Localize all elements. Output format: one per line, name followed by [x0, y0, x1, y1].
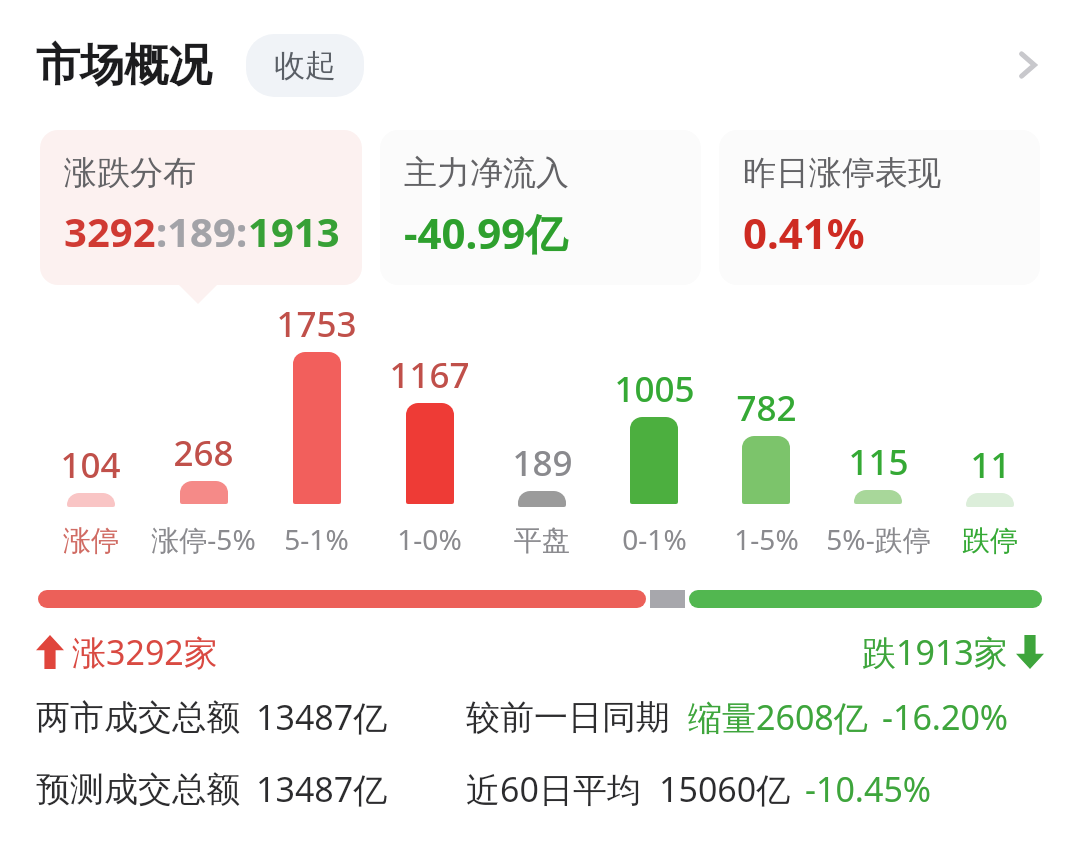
staticText: 两市成交总额 — [36, 696, 240, 739]
staticText: 预测成交总额 — [36, 768, 240, 811]
staticText: -16.20% — [882, 694, 1009, 740]
staticText: 189 — [512, 439, 573, 487]
staticText: 1005 — [614, 365, 695, 413]
button[interactable]: 昨日涨停表现 — [719, 130, 1040, 285]
staticText: 0.41% — [743, 204, 865, 261]
staticText: 跌停 — [962, 523, 1018, 558]
button[interactable]: 主力净流入 — [380, 130, 701, 285]
staticText: 涨停-5% — [151, 520, 256, 558]
staticText: 0-1% — [622, 520, 687, 558]
staticText: 1753 — [276, 300, 357, 348]
staticText: 缩量2608亿 — [688, 694, 868, 740]
staticText: 5-1% — [284, 520, 349, 558]
staticText: 1-0% — [397, 520, 462, 558]
staticText: :189: — [156, 204, 248, 258]
button[interactable]: 涨跌分布 — [40, 130, 362, 285]
staticText: 跌1913家 — [862, 629, 1008, 675]
staticText: 15060亿 — [659, 766, 791, 812]
staticText: 13487亿 — [256, 694, 388, 740]
staticText: 13487亿 — [256, 766, 388, 812]
staticText: 昨日涨停表现 — [743, 152, 941, 194]
staticText: 平盘 — [514, 523, 570, 558]
staticText: 收起 — [274, 46, 336, 85]
staticText: 涨3292家 — [72, 629, 218, 675]
staticText: 涨停 — [63, 523, 119, 558]
staticText: 11 — [970, 441, 1011, 489]
staticText: 主力净流入 — [404, 152, 569, 194]
button[interactable]: 收起 — [246, 34, 364, 97]
staticText: 268 — [173, 429, 234, 477]
staticText: 104 — [60, 441, 121, 489]
button[interactable]: 展开更多 — [992, 29, 1064, 101]
staticText: 5%-跌停 — [826, 520, 931, 558]
staticText: 3292 — [64, 204, 156, 258]
staticText: 较前一日同期 — [466, 696, 670, 739]
staticText: 1-5% — [734, 520, 799, 558]
staticText: 115 — [848, 438, 909, 486]
staticText: -10.45% — [805, 766, 932, 812]
staticText: -40.99亿 — [404, 204, 568, 261]
staticText: 市场概况 — [36, 38, 212, 93]
staticText: 1913 — [248, 204, 340, 258]
staticText: 782 — [736, 384, 797, 432]
staticText: 涨跌分布 — [64, 152, 196, 194]
staticText: 1167 — [389, 351, 470, 399]
staticText: 近60日平均 — [466, 766, 641, 812]
